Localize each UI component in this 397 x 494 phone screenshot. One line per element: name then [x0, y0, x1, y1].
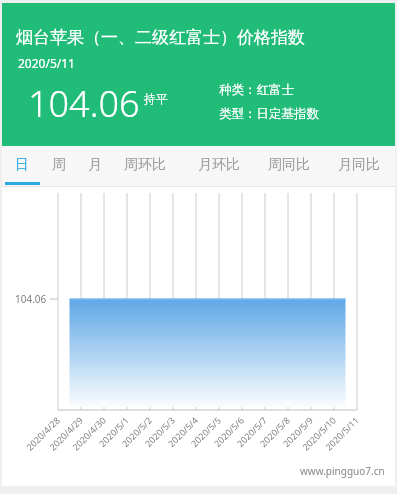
staticText: 日	[15, 156, 29, 174]
staticText: 类型：日定基指数	[219, 106, 319, 122]
staticText: 周环比	[124, 156, 166, 174]
button[interactable]: 周环比	[116, 146, 174, 184]
staticText: 周	[52, 156, 66, 174]
staticText: 104.06	[28, 79, 140, 128]
button[interactable]: 周	[43, 146, 75, 184]
staticText: 持平	[144, 91, 168, 106]
button[interactable]: 月同比	[330, 146, 388, 184]
staticText: 月环比	[198, 156, 240, 174]
button[interactable]: 周同比	[260, 146, 318, 184]
button[interactable]: 日	[6, 146, 38, 184]
button[interactable]: 月	[79, 146, 111, 184]
staticText: 周同比	[268, 156, 310, 174]
staticText: 月	[88, 156, 102, 174]
staticText: 种类：红富士	[219, 82, 294, 98]
staticText: 2020/5/11	[18, 55, 75, 71]
staticText: 烟台苹果（一、二级红富士）价格指数	[16, 27, 305, 48]
staticText: 月同比	[338, 156, 380, 174]
button[interactable]: 月环比	[190, 146, 248, 184]
